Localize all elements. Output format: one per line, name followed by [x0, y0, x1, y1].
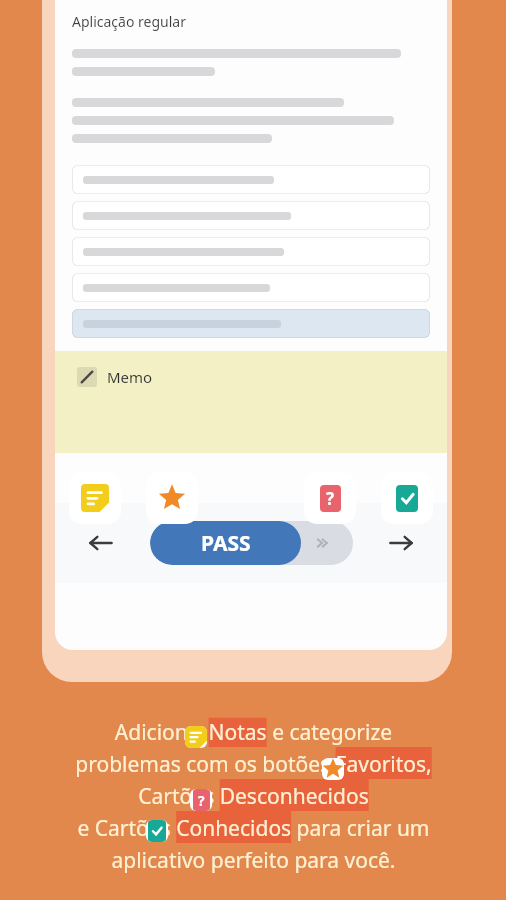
- button[interactable]: Note: [69, 472, 121, 524]
- button[interactable]: [72, 273, 430, 302]
- button[interactable]: Favorite: [146, 472, 198, 524]
- staticText: Memo: [107, 367, 153, 387]
- staticText: ?: [198, 791, 205, 810]
- button[interactable]: PASS: [150, 521, 353, 565]
- button[interactable]: Next: [381, 523, 421, 563]
- button[interactable]: Known: [381, 472, 433, 524]
- staticText: ?: [326, 487, 335, 510]
- staticText: Aplicação regular: [72, 12, 186, 31]
- button[interactable]: Previous: [81, 523, 121, 563]
- staticText: Adicione Notas e categorize problemas co…: [75, 718, 432, 874]
- button[interactable]: [72, 237, 430, 266]
- staticText: PASS: [201, 529, 251, 558]
- button[interactable]: Memo: [77, 367, 153, 387]
- button[interactable]: Unknown: [304, 472, 356, 524]
- button[interactable]: [72, 165, 430, 194]
- button[interactable]: [72, 309, 430, 338]
- button[interactable]: [72, 201, 430, 230]
